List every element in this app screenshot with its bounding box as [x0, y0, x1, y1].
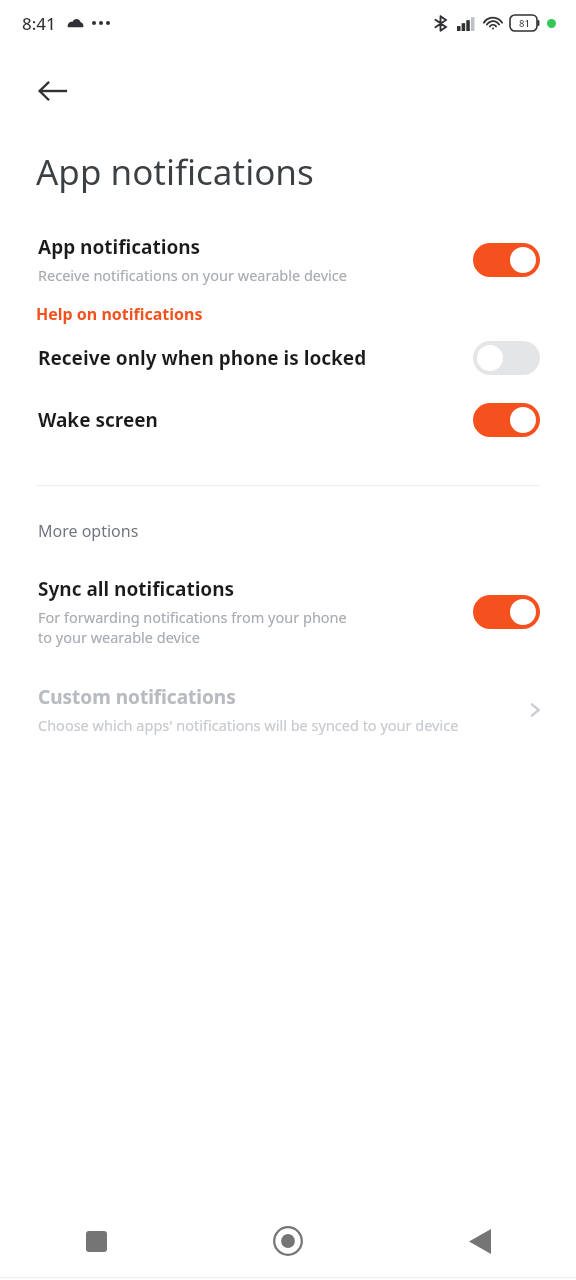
button[interactable]: Toggle on	[473, 243, 540, 277]
staticText: 8:41	[22, 12, 56, 35]
staticText: 81	[519, 17, 530, 30]
staticText: For forwarding notifications from your p…	[38, 607, 351, 648]
staticText: App notifications	[38, 234, 201, 260]
button[interactable]: App notifications	[0, 230, 576, 289]
staticText: Choose which apps' notifications will be…	[38, 715, 459, 735]
staticText: More options	[38, 520, 139, 542]
button[interactable]: Receive only when phone is locked	[0, 337, 576, 379]
button[interactable]: Help on notifications	[0, 289, 576, 337]
button[interactable]: Recents	[0, 1205, 192, 1277]
button[interactable]: Home	[192, 1205, 384, 1277]
staticText: Wake screen	[38, 407, 158, 433]
staticText: Custom notifications	[38, 684, 236, 710]
button[interactable]: Wake screen	[0, 399, 576, 441]
button[interactable]: Custom notifications	[0, 680, 576, 739]
staticText: Sync all notifications	[38, 576, 235, 602]
staticText: App notifications	[36, 148, 314, 196]
button[interactable]: Back	[384, 1205, 576, 1277]
button[interactable]: Toggle on	[473, 595, 540, 629]
button[interactable]: Sync all notifications	[0, 572, 576, 652]
staticText: Receive notifications on your wearable d…	[38, 265, 461, 285]
staticText: Receive only when phone is locked	[38, 345, 367, 371]
staticText: Help on notifications	[36, 303, 203, 325]
button[interactable]: Back	[22, 60, 84, 122]
button[interactable]: Toggle off	[473, 341, 540, 375]
button[interactable]: Toggle on	[473, 403, 540, 437]
